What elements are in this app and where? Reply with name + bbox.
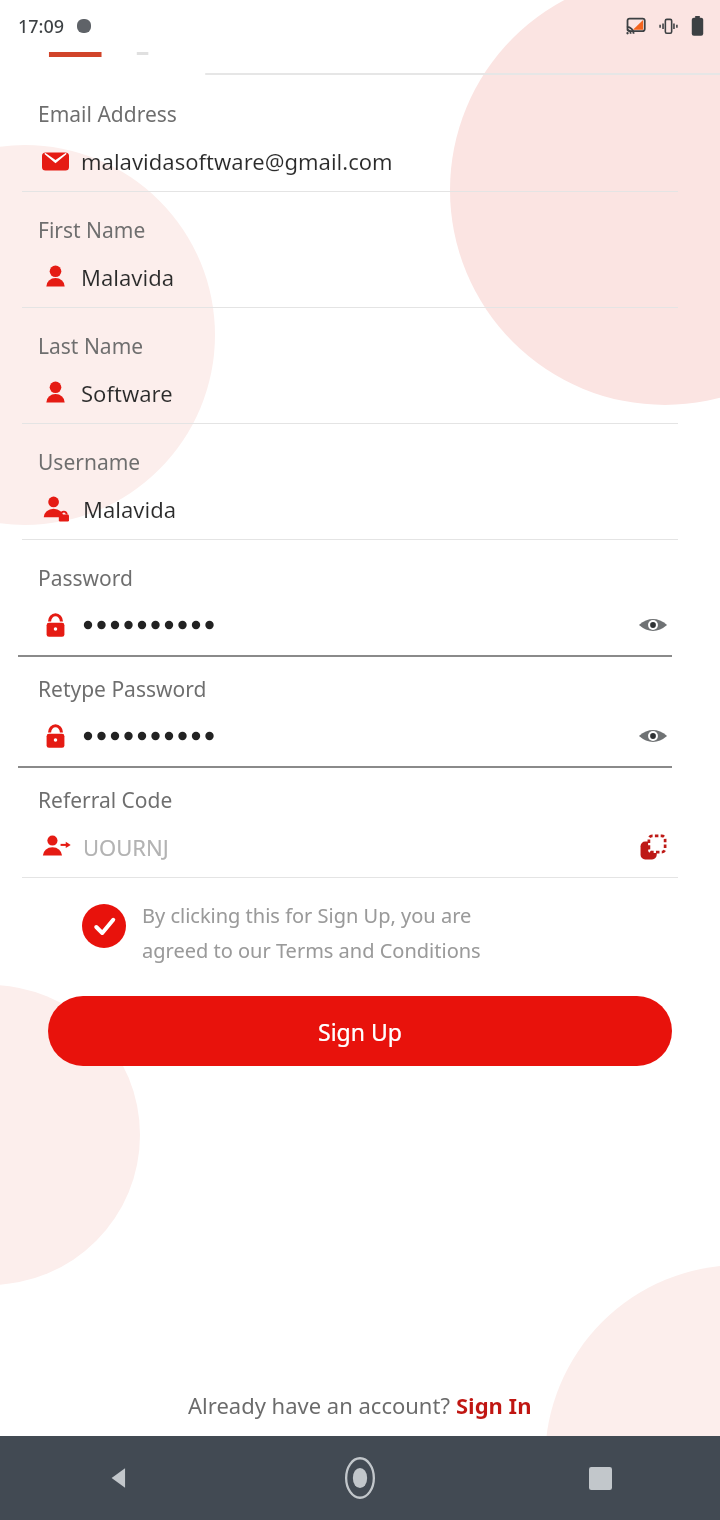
staticText: malavidasoftware@gmail.com xyxy=(81,146,393,176)
button[interactable]: Password xyxy=(0,564,720,657)
staticText: Already have an account? xyxy=(188,1390,456,1420)
staticText: Email Address xyxy=(38,100,177,129)
button[interactable]: Show password xyxy=(632,716,674,756)
button[interactable]: Back xyxy=(0,1436,240,1520)
button[interactable]: First Name xyxy=(0,216,720,308)
button[interactable]: Retype Password xyxy=(0,675,720,768)
button[interactable]: Show password xyxy=(632,605,674,645)
button[interactable]: Email Address xyxy=(0,100,720,192)
button[interactable]: Referral Code xyxy=(0,786,720,878)
staticText: 17:09 xyxy=(18,14,65,39)
button[interactable]: Sign Up xyxy=(48,996,672,1066)
button[interactable]: Last Name xyxy=(0,332,720,424)
button[interactable]: Username xyxy=(0,448,720,540)
staticText: Sign In xyxy=(456,1390,532,1420)
staticText: UOURNJ xyxy=(83,832,169,862)
staticText: Retype Password xyxy=(38,675,207,704)
button[interactable]: Copy referral code xyxy=(632,827,674,867)
staticText: Last Name xyxy=(38,332,144,361)
button[interactable]: Home xyxy=(240,1436,480,1520)
staticText: Malavida xyxy=(81,262,175,292)
staticText: Username xyxy=(38,448,141,477)
staticText: agreed to our Terms and Conditions xyxy=(142,937,481,964)
staticText: Malavida xyxy=(83,494,177,524)
button[interactable]: Agree to terms xyxy=(82,902,676,964)
staticText: By clicking this for Sign Up, you are xyxy=(142,902,472,929)
staticText: Referral Code xyxy=(38,786,173,815)
button[interactable]: Recent apps xyxy=(480,1436,720,1520)
staticText: Sign Up xyxy=(318,1016,402,1047)
other: Agree to terms xyxy=(82,904,126,948)
staticText: Password xyxy=(38,564,133,593)
staticText: First Name xyxy=(38,216,146,245)
staticText: Software xyxy=(81,378,173,408)
button[interactable]: Already have an account? xyxy=(0,1390,720,1420)
